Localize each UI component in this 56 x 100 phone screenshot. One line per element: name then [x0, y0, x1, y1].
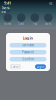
button[interactable]: Cancel: [10, 64, 21, 69]
staticText: ıII: [49, 0, 52, 6]
button[interactable]: Login: [35, 64, 46, 69]
staticText: Overview: [1, 7, 10, 14]
button[interactable]: Pay: [29, 13, 41, 26]
button[interactable]: Overview: [1, 8, 11, 12]
staticText: Login: [36, 65, 44, 68]
staticText: Card: [18, 22, 24, 26]
staticText: More: [45, 22, 52, 26]
staticText: Password: [22, 50, 34, 54]
staticText: Home: [4, 22, 12, 26]
staticText: Confirm: [22, 57, 33, 61]
button[interactable]: Home: [2, 13, 14, 26]
button[interactable]: More: [42, 13, 54, 26]
staticText: Pay: [33, 22, 37, 26]
staticText: Login: [22, 35, 33, 40]
staticText: 9:41: [4, 0, 11, 6]
staticText: Cancel: [11, 65, 20, 68]
staticText: Username: [21, 43, 34, 47]
button[interactable]: Card: [15, 13, 27, 26]
